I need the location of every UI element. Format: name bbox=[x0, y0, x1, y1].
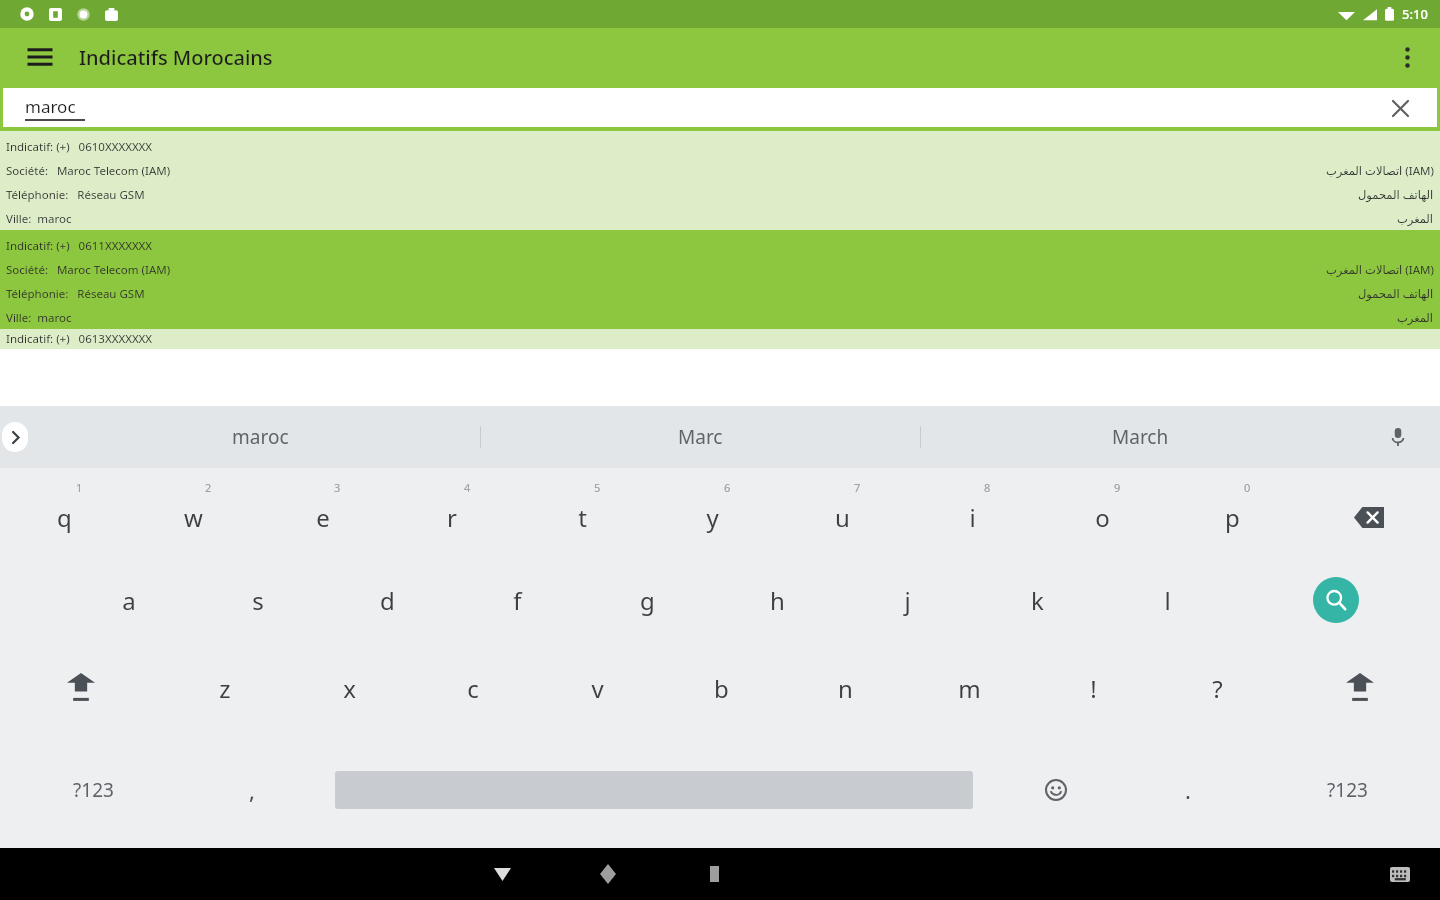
staticText: Indicatif: (+) 0611XXXXXXX bbox=[6, 238, 153, 254]
staticText: maroc bbox=[232, 424, 289, 450]
staticText: ? bbox=[1212, 672, 1223, 705]
staticText: , bbox=[249, 775, 255, 805]
button[interactable]: h bbox=[712, 556, 842, 644]
button[interactable]: 2 bbox=[129, 468, 258, 556]
button[interactable]: 6 bbox=[647, 468, 777, 556]
staticText: l bbox=[1164, 584, 1171, 617]
staticText: y bbox=[706, 501, 719, 534]
button[interactable]: 0 bbox=[1167, 468, 1297, 556]
button[interactable]: Voice input bbox=[1378, 417, 1418, 457]
staticText: 7 bbox=[854, 480, 861, 495]
button[interactable]: More options bbox=[1383, 33, 1431, 81]
staticText: x bbox=[343, 672, 356, 705]
staticText: e bbox=[316, 501, 330, 534]
staticText: n bbox=[838, 672, 853, 705]
button[interactable]: ? bbox=[1155, 644, 1279, 732]
staticText: Indicatifs Morocains bbox=[79, 44, 273, 71]
button[interactable]: m bbox=[907, 644, 1031, 732]
button[interactable]: l bbox=[1102, 556, 1232, 644]
button[interactable]: maroc bbox=[3, 88, 1437, 127]
button[interactable]: v bbox=[535, 644, 659, 732]
button[interactable]: 8 bbox=[907, 468, 1037, 556]
staticText: اتصالات المغرب (IAM) bbox=[1326, 163, 1434, 179]
staticText: v bbox=[591, 672, 604, 705]
staticText: Indicatif: (+) 0613XXXXXXX bbox=[6, 331, 153, 347]
button[interactable]: n bbox=[783, 644, 907, 732]
button[interactable]: b bbox=[659, 644, 783, 732]
button[interactable]: Marc bbox=[481, 406, 920, 468]
staticText: المغرب bbox=[1397, 311, 1434, 324]
staticText: u bbox=[835, 501, 850, 534]
button[interactable]: k bbox=[972, 556, 1102, 644]
staticText: 4 bbox=[464, 480, 471, 495]
staticText: Téléphonie: Réseau GSM bbox=[6, 187, 145, 203]
button[interactable]: 1 bbox=[0, 468, 129, 556]
button[interactable]: 3 bbox=[258, 468, 387, 556]
button[interactable]: Backspace bbox=[1297, 468, 1440, 556]
button[interactable]: ! bbox=[1031, 644, 1155, 732]
staticText: h bbox=[770, 584, 785, 617]
staticText: Société: Maroc Telecom (IAM) bbox=[6, 163, 171, 179]
staticText: b bbox=[714, 672, 729, 705]
staticText: i bbox=[969, 501, 976, 534]
staticText: c bbox=[467, 672, 479, 705]
staticText: Société: Maroc Telecom (IAM) bbox=[6, 262, 171, 278]
button[interactable]: , bbox=[186, 732, 318, 848]
staticText: r bbox=[447, 501, 457, 534]
button[interactable]: Recent apps bbox=[661, 848, 767, 900]
button[interactable]: maroc bbox=[40, 406, 480, 468]
staticText: t bbox=[578, 501, 587, 534]
button[interactable]: 4 bbox=[387, 468, 517, 556]
button[interactable]: Hide keyboard bbox=[450, 848, 555, 900]
staticText: maroc bbox=[25, 95, 76, 118]
button[interactable]: Space bbox=[318, 732, 990, 848]
staticText: 2 bbox=[205, 480, 212, 495]
staticText: o bbox=[1095, 501, 1110, 534]
button[interactable]: d bbox=[322, 556, 452, 644]
staticText: g bbox=[640, 584, 655, 617]
staticText: . bbox=[1185, 775, 1191, 805]
staticText: Indicatif: (+) 0610XXXXXXX bbox=[6, 139, 153, 155]
button[interactable]: Home bbox=[555, 848, 661, 900]
staticText: 6 bbox=[724, 480, 731, 495]
staticText: q bbox=[57, 501, 72, 534]
staticText: Ville: maroc bbox=[6, 211, 72, 227]
button[interactable]: March bbox=[921, 406, 1360, 468]
staticText: ?123 bbox=[73, 777, 114, 803]
staticText: j bbox=[904, 584, 911, 617]
button[interactable]: s bbox=[193, 556, 322, 644]
button[interactable]: Expand suggestions bbox=[2, 422, 28, 452]
staticText: 5 bbox=[594, 480, 601, 495]
button[interactable]: Shift bbox=[1279, 644, 1440, 732]
staticText: 9 bbox=[1114, 480, 1121, 495]
button[interactable]: . bbox=[1122, 732, 1254, 848]
button[interactable]: Indicatif: (+) 0611XXXXXXX bbox=[0, 230, 1440, 329]
button[interactable]: Search bbox=[1232, 556, 1440, 644]
button[interactable]: 7 bbox=[777, 468, 907, 556]
button[interactable]: j bbox=[842, 556, 972, 644]
staticText: p bbox=[1225, 501, 1240, 534]
button[interactable]: c bbox=[411, 644, 535, 732]
staticText: Marc bbox=[678, 424, 723, 450]
staticText: w bbox=[184, 501, 203, 534]
button[interactable]: z bbox=[162, 644, 287, 732]
staticText: ! bbox=[1090, 672, 1097, 705]
button[interactable]: x bbox=[287, 644, 411, 732]
button[interactable]: Switch keyboard bbox=[1380, 854, 1420, 894]
button[interactable]: Indicatif: (+) 0613XXXXXXX bbox=[0, 329, 1440, 349]
staticText: 5:10 bbox=[1402, 5, 1428, 23]
staticText: Ville: maroc bbox=[6, 310, 72, 326]
button[interactable]: Open navigation drawer bbox=[16, 33, 64, 81]
button[interactable]: ?123 bbox=[0, 732, 186, 848]
button[interactable]: Indicatif: (+) 0610XXXXXXX bbox=[0, 131, 1440, 230]
button[interactable]: f bbox=[452, 556, 582, 644]
button[interactable]: Emoji bbox=[990, 732, 1122, 848]
staticText: اتصالات المغرب (IAM) bbox=[1326, 262, 1434, 278]
button[interactable]: Shift bbox=[0, 644, 162, 732]
button[interactable]: 5 bbox=[517, 468, 647, 556]
button[interactable]: ?123 bbox=[1254, 732, 1440, 848]
button[interactable]: g bbox=[582, 556, 712, 644]
button[interactable]: 9 bbox=[1037, 468, 1167, 556]
button[interactable]: Clear search bbox=[1383, 91, 1417, 125]
button[interactable]: a bbox=[64, 556, 193, 644]
